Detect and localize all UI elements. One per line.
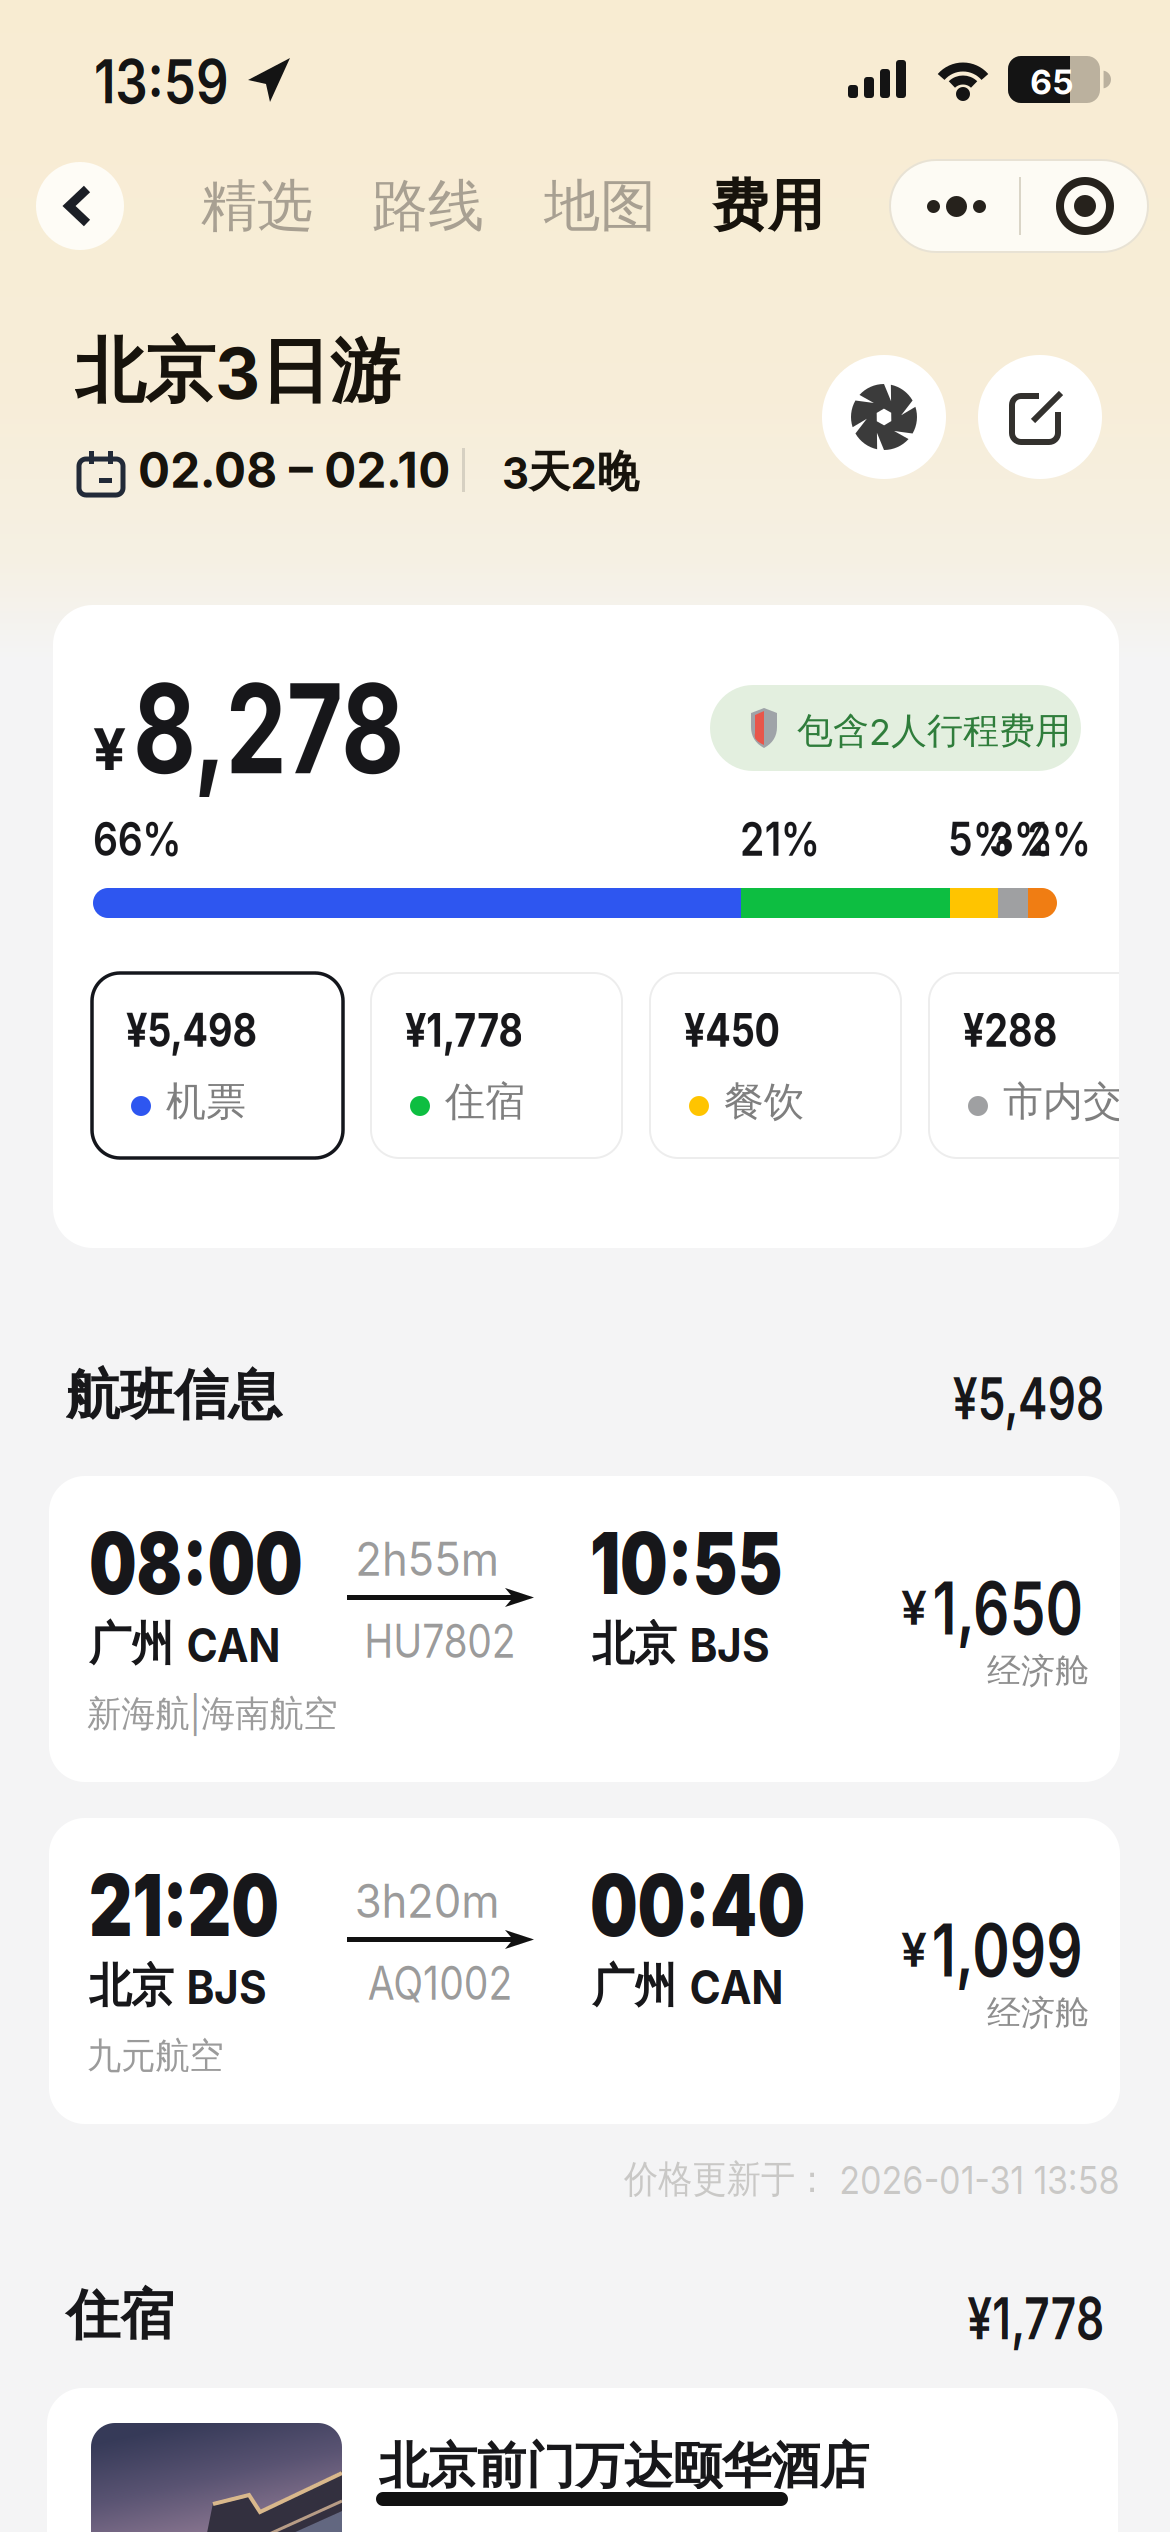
staticText: 66% [93,812,197,866]
staticText: 北京3日游 [75,329,400,415]
staticText: 02.08 – 02.10 [138,440,467,499]
staticText: 经济舱 [987,1992,1089,2034]
staticText: ¥ [93,715,126,783]
staticText: 住宿 [66,2282,174,2348]
staticText: 包含2人行程费用 [797,709,1071,753]
staticText: 21:20 [89,1855,329,1955]
staticText: 2% [1027,812,1102,866]
staticText: 机票 [166,1077,246,1126]
staticText: 00:40 [590,1855,862,1955]
staticText: ¥ [901,1581,927,1635]
staticText: 北京 BJS [592,1616,785,1672]
button[interactable]: ¥450 [650,973,901,1158]
button[interactable]: Edit [978,355,1102,479]
staticText: HU7802 [351,1614,529,1668]
staticText: 经济舱 [987,1650,1089,1692]
staticText: ¥ [901,1923,927,1977]
button[interactable]: 精选 [187,160,327,252]
staticText: 路线 [372,172,484,240]
staticText: 13:59 [94,46,252,117]
staticText: 广州 CAN [592,1958,800,2014]
staticText: 费用 [712,172,824,240]
button[interactable]: 北京前门万达颐华酒店 [47,2388,1118,2532]
staticText: 北京前门万达颐华酒店 [379,2436,869,2496]
staticText: 住宿 [445,1077,525,1126]
staticText: 3天2晚 [502,445,646,499]
staticText: ¥1,778 [924,2284,1104,2352]
staticText: 65 [1030,62,1074,102]
button[interactable]: 08:00 [49,1476,1120,1782]
button[interactable]: ¥5,498 [92,973,343,1158]
button[interactable]: 地图 [530,160,670,252]
staticText: ¥5,498 [126,1003,286,1057]
button[interactable]: ¥288 [929,973,1170,1158]
staticText: 1,099 [889,1907,1083,1993]
staticText: 1,650 [890,1565,1083,1651]
staticText: ¥450 [684,1003,801,1057]
staticText: 广州 CAN [89,1616,297,1672]
button[interactable]: ¥1,778 [371,973,622,1158]
button[interactable]: Close [1019,160,1148,252]
staticText: AQ1002 [355,1956,525,2010]
staticText: 餐饮 [724,1077,804,1126]
staticText: 价格更新于： 2026-01-31 13:58 [569,2156,1120,2203]
staticText: 市内交通 [1003,1077,1163,1126]
button[interactable]: More [890,160,1019,252]
staticText: 8,278 [133,655,481,801]
staticText: ¥5,498 [905,1364,1104,1432]
button[interactable]: 费用 [698,160,838,252]
staticText: 北京 BJS [89,1958,282,2014]
staticText: 新海航|海南航空 [87,1692,351,1736]
staticText: 九元航空 [87,2034,231,2078]
button[interactable]: Back [36,162,124,250]
staticText: 5% [948,812,1023,866]
staticText: 10:55 [590,1513,834,1613]
staticText: 地图 [544,172,656,240]
staticText: ¥1,778 [405,1003,549,1057]
staticText: ¥288 [963,1003,1078,1057]
staticText: 3% [989,812,1064,866]
staticText: 21% [740,812,834,866]
staticText: 3h20m [351,1874,503,1928]
staticText: 08:00 [89,1513,359,1613]
button[interactable]: 21:20 [49,1818,1120,2124]
staticText: 航班信息 [66,1362,282,1428]
button[interactable]: 路线 [358,160,498,252]
staticText: 2h55m [351,1532,502,1586]
staticText: 精选 [201,172,313,240]
button[interactable]: Camera [822,355,946,479]
